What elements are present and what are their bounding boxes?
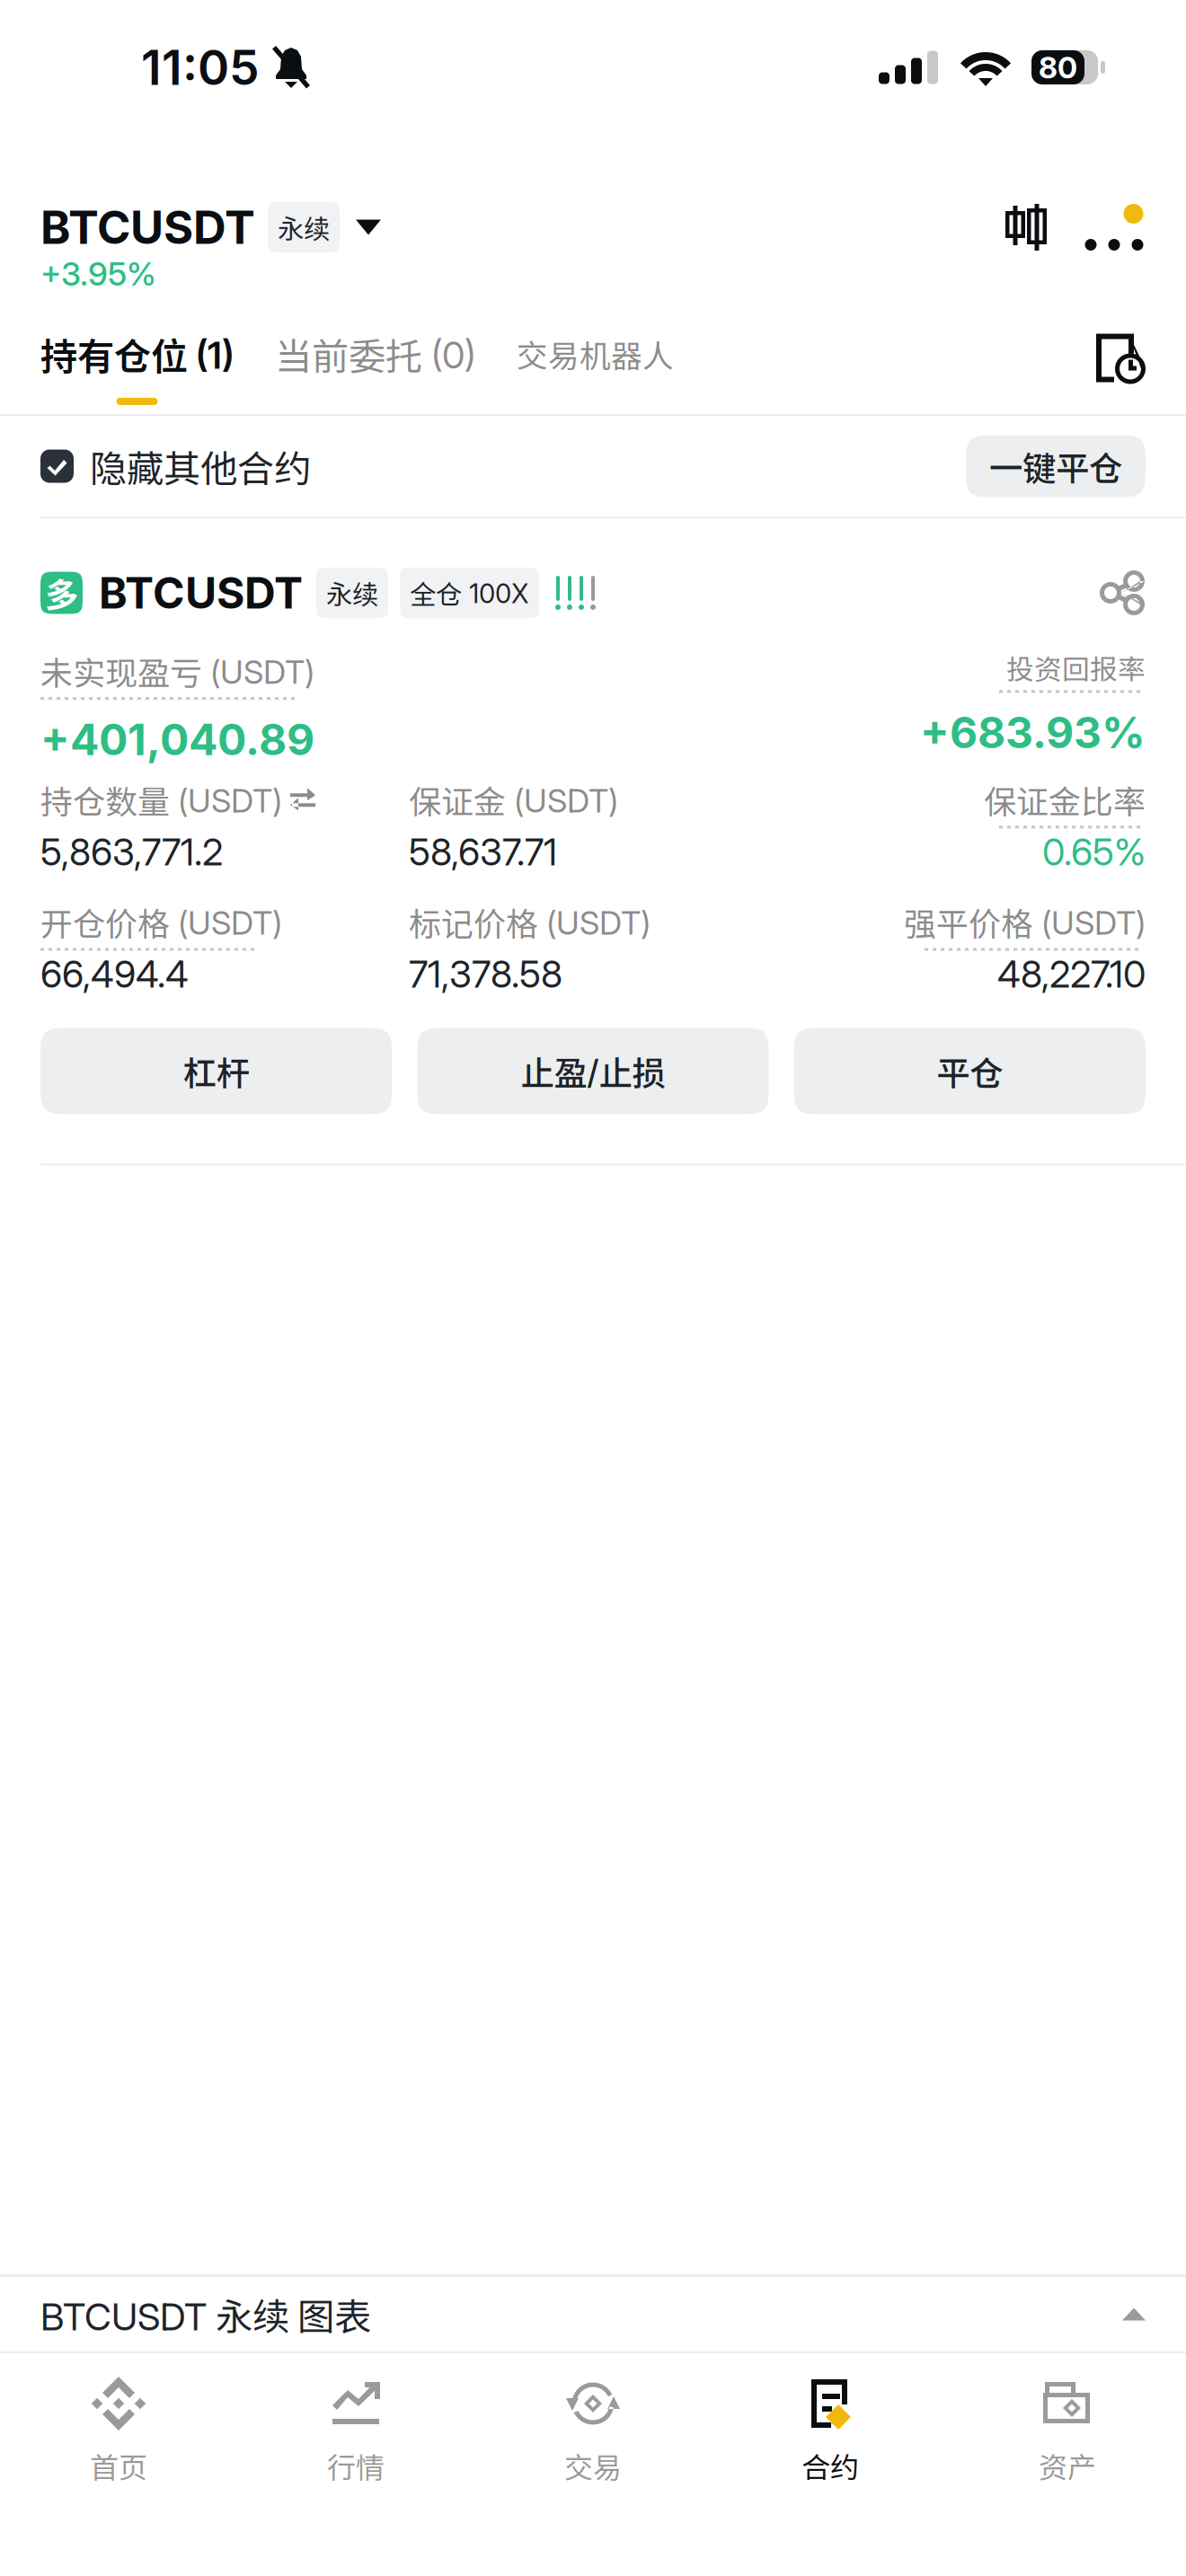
button[interactable]: 交易: [474, 2353, 712, 2506]
staticText: 未实现盈亏 (USDT): [40, 648, 314, 694]
button[interactable]: Share position: [1099, 569, 1146, 616]
staticText: 0.65%: [1042, 829, 1146, 874]
staticText: +401,040.89: [40, 713, 314, 765]
staticText: 永续: [326, 574, 378, 612]
staticText: 持仓数量 (USDT): [40, 776, 282, 823]
staticText: 当前委托 (0): [275, 327, 475, 381]
staticText: 隐藏其他合约: [90, 439, 311, 493]
button[interactable]: 一键平仓: [966, 435, 1146, 497]
staticText: 11:05: [141, 38, 260, 96]
staticText: 58,637.71: [409, 829, 557, 874]
button[interactable]: 止盈/止损: [417, 1028, 769, 1114]
staticText: 平仓: [936, 1047, 1003, 1095]
staticText: BTCUSDT 永续 图表: [40, 2287, 371, 2341]
button[interactable]: More options: [1083, 204, 1146, 251]
button[interactable]: BTCUSDT 永续 图表: [0, 2277, 1186, 2351]
staticText: 48,227.10: [997, 952, 1146, 997]
staticText: 持有仓位 (1): [40, 327, 234, 381]
staticText: 资产: [1039, 2445, 1096, 2486]
button[interactable]: 隐藏其他合约: [40, 426, 311, 507]
staticText: 交易机器人: [517, 331, 674, 376]
button[interactable]: 平仓: [794, 1028, 1146, 1114]
staticText: 永续: [278, 208, 330, 246]
staticText: 80: [1039, 49, 1077, 85]
staticText: +3.95%: [40, 254, 156, 293]
button[interactable]: 交易机器人: [517, 332, 674, 400]
button[interactable]: 当前委托 (0): [275, 332, 475, 400]
staticText: 保证金 (USDT): [409, 776, 618, 823]
staticText: 合约: [801, 2445, 859, 2486]
button[interactable]: 行情: [237, 2353, 474, 2506]
staticText: 一键平仓: [989, 442, 1122, 490]
staticText: 止盈/止损: [521, 1047, 665, 1095]
staticText: 开仓价格 (USDT): [40, 898, 282, 945]
staticText: 保证金比率: [984, 776, 1146, 823]
staticText: 交易: [564, 2445, 622, 2486]
staticText: 首页: [90, 2445, 147, 2486]
staticText: 强平价格 (USDT): [904, 898, 1146, 945]
button[interactable]: 资产: [949, 2353, 1186, 2506]
button[interactable]: 杠杆: [40, 1028, 392, 1114]
staticText: 5,863,771.2: [40, 829, 223, 874]
staticText: BTCUSDT: [99, 567, 303, 619]
button[interactable]: 首页: [0, 2353, 237, 2506]
staticText: 多: [45, 569, 78, 617]
staticText: 杠杆: [183, 1047, 250, 1095]
staticText: 71,378.58: [409, 952, 562, 997]
button[interactable]: 合约: [712, 2353, 949, 2506]
staticText: 行情: [327, 2445, 385, 2486]
staticText: BTCUSDT: [40, 200, 255, 255]
button[interactable]: Order history: [1095, 332, 1146, 400]
button[interactable]: K-line chart: [1005, 204, 1047, 251]
staticText: +683.93%: [920, 706, 1146, 759]
staticText: 全仓 100X: [410, 574, 529, 612]
staticText: 投资回报率: [1006, 648, 1146, 687]
button[interactable]: 持有仓位 (1): [40, 332, 234, 400]
staticText: 66,494.4: [40, 952, 189, 997]
staticText: 标记价格 (USDT): [409, 898, 651, 945]
